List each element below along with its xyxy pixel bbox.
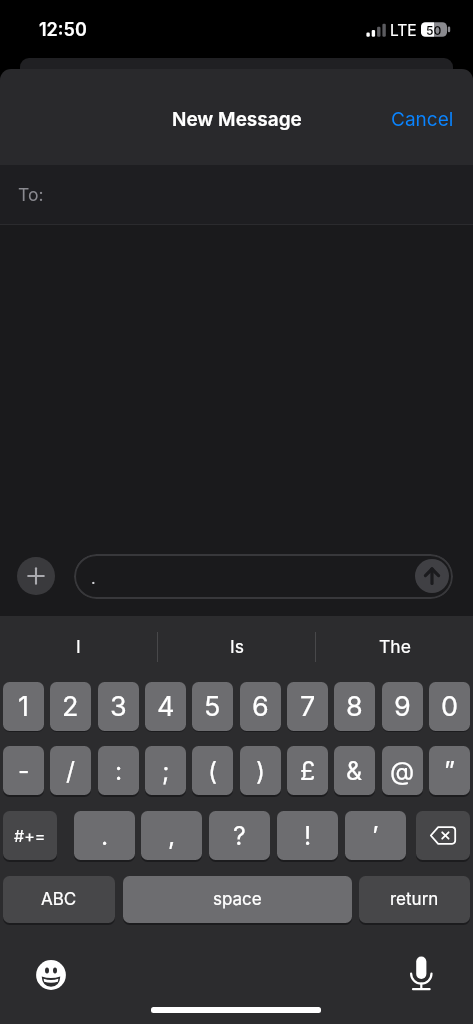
- button[interactable]: Cancel: [352, 102, 454, 137]
- staticText: 2: [62, 690, 79, 723]
- button[interactable]: 3: [98, 682, 139, 731]
- staticText: 1: [18, 690, 29, 723]
- staticText: 5: [204, 690, 221, 723]
- staticText: New Message: [172, 108, 302, 131]
- button[interactable]: :: [98, 746, 139, 795]
- button[interactable]: .: [74, 811, 135, 860]
- staticText: @: [390, 756, 415, 786]
- button[interactable]: return: [359, 876, 470, 923]
- button[interactable]: #+=: [3, 811, 57, 860]
- staticText: /: [66, 756, 76, 786]
- staticText: 9: [394, 690, 411, 723]
- staticText: ?: [233, 821, 246, 851]
- button[interactable]: ,: [141, 811, 202, 860]
- staticText: #+=: [14, 826, 46, 845]
- staticText: Is: [230, 636, 244, 657]
- staticText: ): [256, 756, 266, 786]
- staticText: Cancel: [391, 108, 454, 131]
- staticText: &: [346, 756, 363, 786]
- staticText: To:: [18, 184, 44, 205]
- button[interactable]: ): [240, 746, 281, 795]
- staticText: ,: [168, 821, 176, 851]
- staticText: -: [18, 756, 30, 786]
- button[interactable]: 9: [382, 682, 423, 731]
- staticText: space: [213, 889, 262, 910]
- staticText: .: [101, 821, 109, 851]
- button[interactable]: I: [0, 630, 157, 663]
- staticText: .: [91, 568, 96, 587]
- button[interactable]: 7: [287, 682, 328, 731]
- button[interactable]: [416, 811, 470, 860]
- button[interactable]: [409, 954, 434, 992]
- staticText: LTE: [390, 21, 417, 40]
- button[interactable]: ?: [209, 811, 270, 860]
- staticText: 0: [441, 690, 459, 723]
- staticText: 8: [346, 690, 363, 723]
- button[interactable]: !: [277, 811, 338, 860]
- staticText: :: [115, 756, 123, 786]
- button[interactable]: 2: [50, 682, 91, 731]
- staticText: ABC: [41, 889, 77, 910]
- button[interactable]: To:: [18, 165, 455, 224]
- button[interactable]: ’: [345, 811, 406, 860]
- staticText: 50: [426, 23, 442, 38]
- staticText: ;: [162, 756, 170, 786]
- button[interactable]: [415, 559, 449, 593]
- button[interactable]: &: [334, 746, 375, 795]
- button[interactable]: space: [123, 876, 352, 923]
- staticText: 7: [300, 690, 316, 723]
- staticText: 12:50: [39, 19, 87, 41]
- button[interactable]: ”: [429, 746, 470, 795]
- staticText: return: [390, 889, 439, 910]
- button[interactable]: The: [316, 630, 473, 663]
- button[interactable]: @: [382, 746, 423, 795]
- button[interactable]: [17, 557, 55, 595]
- button[interactable]: ABC: [3, 876, 115, 923]
- button[interactable]: £: [287, 746, 328, 795]
- button[interactable]: 0: [429, 682, 470, 731]
- button[interactable]: ;: [145, 746, 186, 795]
- staticText: The: [379, 636, 411, 657]
- button[interactable]: 8: [334, 682, 375, 731]
- staticText: !: [304, 821, 312, 851]
- button[interactable]: /: [50, 746, 91, 795]
- button[interactable]: 5: [192, 682, 233, 731]
- button[interactable]: 6: [240, 682, 281, 731]
- button[interactable]: (: [192, 746, 233, 795]
- staticText: I: [76, 636, 81, 657]
- staticText: £: [300, 756, 316, 786]
- staticText: 4: [157, 690, 175, 723]
- button[interactable]: 1: [3, 682, 44, 731]
- staticText: (: [208, 756, 218, 786]
- button[interactable]: -: [3, 746, 44, 795]
- button[interactable]: Is: [158, 630, 315, 663]
- button[interactable]: 4: [145, 682, 186, 731]
- button[interactable]: [33, 957, 68, 992]
- staticText: ”: [444, 756, 456, 786]
- staticText: 6: [252, 690, 269, 723]
- staticText: 3: [110, 690, 127, 723]
- staticText: ’: [372, 821, 379, 851]
